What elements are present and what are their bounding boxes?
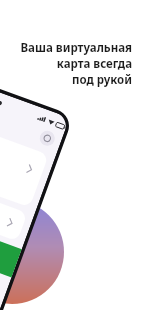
button[interactable]: Ваша виртуальная	[8, 40, 132, 88]
staticText: под рукой	[71, 72, 132, 88]
staticText: Ваша виртуальная	[20, 40, 132, 56]
staticText: карта всегда	[56, 56, 132, 72]
button[interactable]: Virtual card preview	[0, 190, 70, 310]
